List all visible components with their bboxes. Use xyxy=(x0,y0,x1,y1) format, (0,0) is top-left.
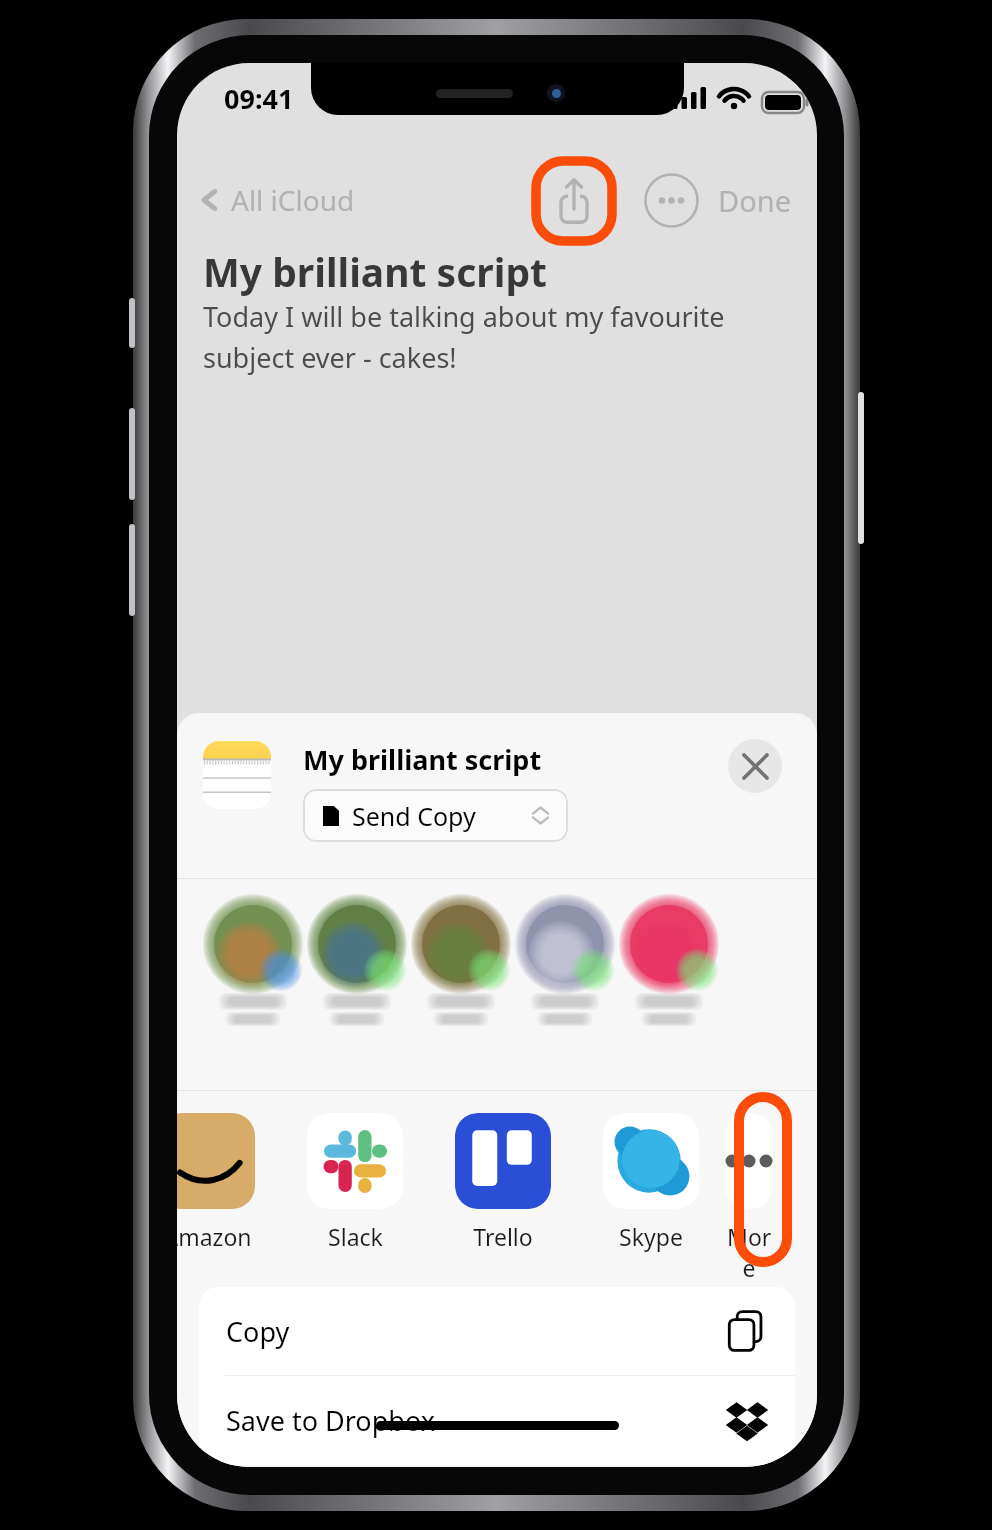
staticText: Send Copy xyxy=(352,799,476,833)
button[interactable]: Close xyxy=(728,739,782,793)
button[interactable]: Copy xyxy=(199,1287,795,1375)
button[interactable] xyxy=(619,879,719,1090)
staticText: Save to Dropbox xyxy=(226,1402,435,1439)
staticText: More xyxy=(725,1221,773,1283)
staticText: Trello xyxy=(473,1221,533,1252)
button[interactable]: All iCloud xyxy=(193,165,355,235)
staticText: Amazon xyxy=(177,1221,252,1252)
button[interactable]: Skype xyxy=(577,1091,725,1287)
staticText: Today I will be talking about my favouri… xyxy=(203,298,773,376)
staticText: My brilliant script xyxy=(203,245,547,298)
button[interactable]: Done xyxy=(718,165,791,235)
staticText: All iCloud xyxy=(231,181,355,219)
button[interactable] xyxy=(307,879,407,1090)
button[interactable]: Save to Dropbox xyxy=(199,1376,795,1464)
staticText: Copy xyxy=(226,1313,290,1350)
staticText: 09:41 xyxy=(224,80,294,117)
button[interactable]: Amazon xyxy=(177,1091,281,1287)
button[interactable]: Send Copy xyxy=(303,789,568,842)
button[interactable] xyxy=(411,879,511,1090)
staticText: Skype xyxy=(619,1221,683,1252)
staticText: Slack xyxy=(328,1221,383,1252)
button[interactable]: Share xyxy=(536,161,612,241)
staticText: Done xyxy=(718,181,791,220)
button[interactable] xyxy=(203,879,303,1090)
staticText: My brilliant script xyxy=(303,741,542,778)
button[interactable]: Slack xyxy=(281,1091,429,1287)
button[interactable] xyxy=(515,879,615,1090)
button[interactable]: More xyxy=(725,1091,773,1287)
button[interactable]: More options xyxy=(644,173,699,228)
button[interactable]: Trello xyxy=(429,1091,577,1287)
